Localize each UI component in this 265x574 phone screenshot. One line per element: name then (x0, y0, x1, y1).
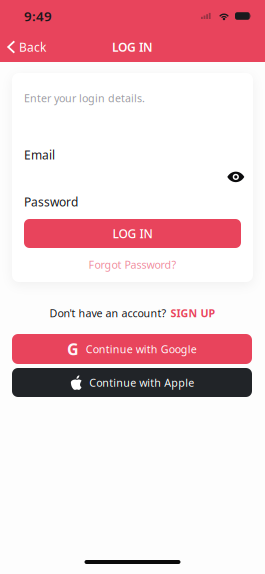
staticText: Enter your login details. (24, 91, 145, 105)
staticText: 9:49 (24, 7, 52, 25)
staticText: Don't have an account? (49, 306, 166, 320)
staticText: LOG IN (112, 39, 153, 55)
button[interactable]: Show password (227, 171, 245, 183)
button[interactable]: Back (0, 34, 53, 60)
staticText: Continue with Google (86, 342, 197, 356)
staticText: SIGN UP (170, 306, 215, 320)
staticText: G (67, 338, 79, 360)
staticText: Continue with Apple (89, 375, 194, 390)
staticText: Password (24, 194, 78, 210)
button[interactable]: Forgot Password? (24, 256, 241, 273)
staticText: Back (19, 39, 46, 55)
staticText: Forgot Password? (88, 257, 176, 272)
button[interactable]: Continue with Apple (12, 368, 252, 397)
button[interactable]: SIGN UP (170, 306, 215, 320)
staticText: LOG IN (112, 225, 152, 241)
button[interactable]: LOG IN (24, 219, 241, 248)
button[interactable]: G (12, 334, 252, 364)
staticText: Email (24, 147, 55, 163)
